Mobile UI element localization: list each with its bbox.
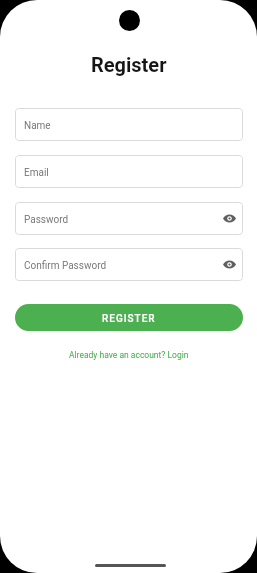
staticText: Confirm Password <box>24 260 107 272</box>
staticText: Register <box>91 53 167 76</box>
button[interactable]: Toggle password visibility <box>221 256 237 272</box>
button[interactable]: Toggle password visibility <box>221 210 237 226</box>
staticText: Password <box>24 214 69 226</box>
staticText: Name <box>24 120 51 132</box>
staticText: Email <box>24 167 49 179</box>
button[interactable]: Already have an account? Login <box>63 347 195 363</box>
staticText: Already have an account? Login <box>69 350 189 360</box>
button[interactable]: Name <box>15 108 243 141</box>
button[interactable]: Confirm Password <box>15 248 243 281</box>
button[interactable]: Email <box>15 155 243 188</box>
staticText: REGISTER <box>102 313 156 325</box>
button[interactable]: REGISTER <box>15 304 243 331</box>
button[interactable]: Password <box>15 202 243 235</box>
